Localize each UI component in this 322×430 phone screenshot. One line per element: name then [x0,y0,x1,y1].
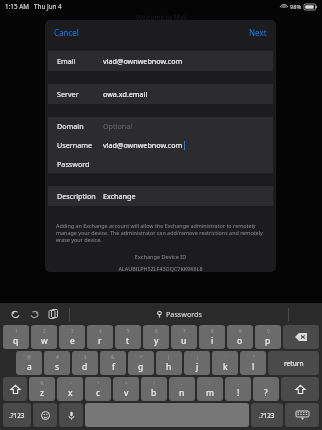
staticText: a [27,361,32,373]
staticText: 98% [290,3,302,11]
button[interactable]: v [113,377,139,401]
button[interactable]: ! [225,377,251,401]
staticText: 3 [71,328,74,334]
button[interactable]: Backspace [283,325,319,349]
button[interactable]: Passwords [156,309,202,319]
staticText: # [56,354,59,360]
staticText: Thu Jun 4 [34,2,62,11]
button[interactable]: f [100,351,126,375]
staticText: t [126,335,130,347]
staticText: r [98,335,102,347]
staticText: Optional [103,121,133,131]
button[interactable]: s [44,351,70,375]
button[interactable]: .?123 [251,403,283,427]
button[interactable]: w [31,325,57,349]
staticText: m [206,387,214,399]
button[interactable]: o [227,325,253,349]
staticText: q [13,335,19,347]
button[interactable]: Shift [281,377,319,401]
staticText: y [154,335,159,347]
staticText: b [151,387,157,399]
button[interactable]: p [255,325,281,349]
staticText: x [68,387,73,399]
staticText: k [223,361,228,373]
button[interactable]: u [171,325,197,349]
staticText: $ [84,354,87,360]
button[interactable]: Undo [8,307,22,321]
staticText: Next [249,27,267,38]
button[interactable]: n [169,377,195,401]
staticText: w [41,335,48,347]
button[interactable]: Next [249,27,267,38]
staticText: vlad@ownwebnow.com [103,56,183,66]
button[interactable]: k [212,351,238,375]
staticText: p [265,335,271,347]
staticText: Cancel [54,27,79,38]
staticText: Username [57,140,92,150]
button[interactable]: return [268,351,319,375]
button[interactable]: Description [48,186,273,206]
staticText: % [40,380,44,386]
button[interactable]: Dictate [59,403,83,427]
staticText: Domain [57,121,84,131]
button[interactable]: .?123 [3,403,31,427]
staticText: 0 [267,328,270,334]
button[interactable]: Shift [3,377,27,401]
staticText: 7 [183,328,186,334]
button[interactable]: Server [48,84,273,104]
staticText: h [166,361,172,373]
button[interactable]: ? [253,377,279,401]
button[interactable]: m [197,377,223,401]
staticText: l [252,361,255,373]
button[interactable]: l [240,351,266,375]
button[interactable]: h [156,351,182,375]
staticText: o [237,335,243,347]
button[interactable]: b [141,377,167,401]
button[interactable]: Redo [27,307,41,321]
staticText: ? [264,387,268,399]
staticText: 9 [239,328,242,334]
button[interactable]: j [184,351,210,375]
staticText: return [284,359,304,368]
staticText: " [253,354,255,360]
staticText: Welcome to Mail [136,13,187,20]
staticText: 4 [99,328,102,334]
staticText: Passwords [166,309,202,319]
staticText: c [96,387,101,399]
staticText: * [140,354,143,360]
staticText: . [265,380,267,386]
staticText: Password [57,159,90,169]
staticText: : [209,380,211,386]
button[interactable]: Domain [48,117,273,135]
button[interactable]: Password [48,155,273,173]
button[interactable]: x [57,377,83,401]
button[interactable]: Hide keyboard [285,403,319,427]
button[interactable]: q [3,325,29,349]
staticText: ) [197,354,199,360]
button[interactable]: i [199,325,225,349]
button[interactable]: Emoji [33,403,57,427]
button[interactable]: z [29,377,55,401]
button[interactable]: Username [48,136,273,154]
staticText: v [124,387,129,399]
staticText: 1 [15,328,18,334]
staticText: 2 [43,328,46,334]
button[interactable]: g [128,351,154,375]
button[interactable]: r [87,325,113,349]
staticText: Email [57,56,76,66]
button[interactable]: Cancel [54,27,79,38]
button[interactable]: y [143,325,169,349]
button[interactable]: a [16,351,42,375]
button[interactable]: e [59,325,85,349]
staticText: i [211,335,214,347]
button[interactable]: c [85,377,111,401]
button[interactable]: Paste [46,307,60,321]
button[interactable]: t [115,325,141,349]
staticText: owa.xd.email [103,89,148,99]
button[interactable]: Email [48,51,273,71]
staticText: .?123 [259,411,275,420]
button[interactable]: d [72,351,98,375]
staticText: @ [27,354,32,360]
staticText: + [97,380,100,386]
